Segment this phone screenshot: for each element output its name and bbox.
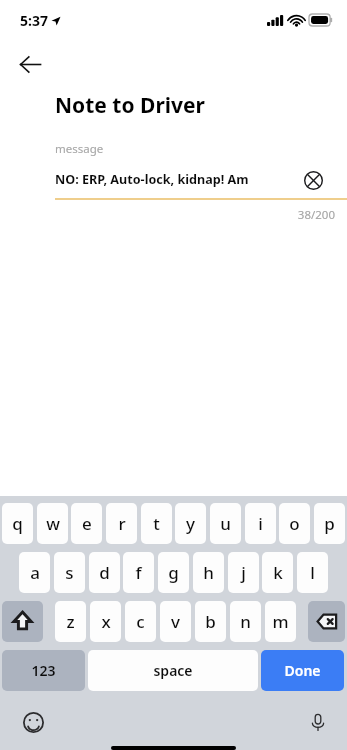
button[interactable]: h [193, 552, 224, 593]
staticText: l [310, 561, 315, 584]
button[interactable]: y [175, 503, 206, 544]
button[interactable]: t [141, 503, 172, 544]
staticText: m [272, 610, 289, 633]
staticText: u [220, 512, 231, 535]
button[interactable]: space [88, 650, 258, 691]
staticText: Note to Driver [55, 91, 205, 120]
staticText: NO: ERP, Auto-lock, kidnap! Am Chinese [55, 171, 300, 188]
button[interactable]: c [125, 601, 156, 642]
button[interactable]: k [262, 552, 293, 593]
staticText: n [240, 610, 251, 633]
button[interactable]: q [2, 503, 33, 544]
staticText: p [324, 512, 335, 535]
staticText: 5:37 [20, 11, 48, 30]
button[interactable]: Backspace [308, 601, 345, 642]
button[interactable]: Done [261, 650, 344, 691]
button[interactable]: b [195, 601, 226, 642]
staticText: z [66, 610, 75, 633]
button[interactable]: z [55, 601, 86, 642]
staticText: s [65, 561, 74, 584]
staticText: y [186, 512, 195, 535]
button[interactable]: u [210, 503, 241, 544]
button[interactable]: s [54, 552, 85, 593]
staticText: space [153, 661, 193, 680]
button[interactable]: f [123, 552, 154, 593]
button[interactable]: e [71, 503, 102, 544]
button[interactable]: m [265, 601, 296, 642]
button[interactable]: Emoji [19, 708, 47, 736]
button[interactable]: NO: ERP, Auto-lock, kidnap! Am Chinese [55, 166, 300, 192]
staticText: r [118, 512, 126, 535]
button[interactable]: w [37, 503, 68, 544]
staticText: d [99, 561, 110, 584]
button[interactable]: Dictation [304, 708, 332, 736]
staticText: c [136, 610, 145, 633]
staticText: w [46, 512, 60, 535]
staticText: k [273, 561, 283, 584]
button[interactable]: l [297, 552, 328, 593]
staticText: h [203, 561, 214, 584]
staticText: i [258, 512, 263, 535]
button[interactable]: d [89, 552, 120, 593]
button[interactable]: v [160, 601, 191, 642]
staticText: x [101, 610, 111, 633]
button[interactable]: i [245, 503, 276, 544]
staticText: e [82, 512, 92, 535]
button[interactable]: j [228, 552, 259, 593]
button[interactable]: x [90, 601, 121, 642]
staticText: message [55, 141, 104, 157]
staticText: o [289, 512, 300, 535]
staticText: t [153, 512, 160, 535]
button[interactable]: p [314, 503, 345, 544]
staticText: g [168, 561, 179, 584]
staticText: v [171, 610, 180, 633]
button[interactable]: g [158, 552, 189, 593]
staticText: Done [284, 661, 321, 680]
staticText: b [205, 610, 216, 633]
button[interactable]: r [106, 503, 137, 544]
button[interactable]: Shift [2, 601, 43, 642]
staticText: f [135, 561, 142, 584]
button[interactable]: 123 [2, 650, 85, 691]
button[interactable]: n [230, 601, 261, 642]
staticText: 123 [31, 661, 56, 680]
button[interactable]: a [19, 552, 50, 593]
staticText: 38/200 [297, 207, 335, 223]
button[interactable]: Back [14, 48, 46, 80]
staticText: q [12, 512, 23, 535]
button[interactable]: Clear text [299, 166, 327, 194]
staticText: a [30, 561, 40, 584]
staticText: j [241, 561, 246, 584]
button[interactable]: o [279, 503, 310, 544]
